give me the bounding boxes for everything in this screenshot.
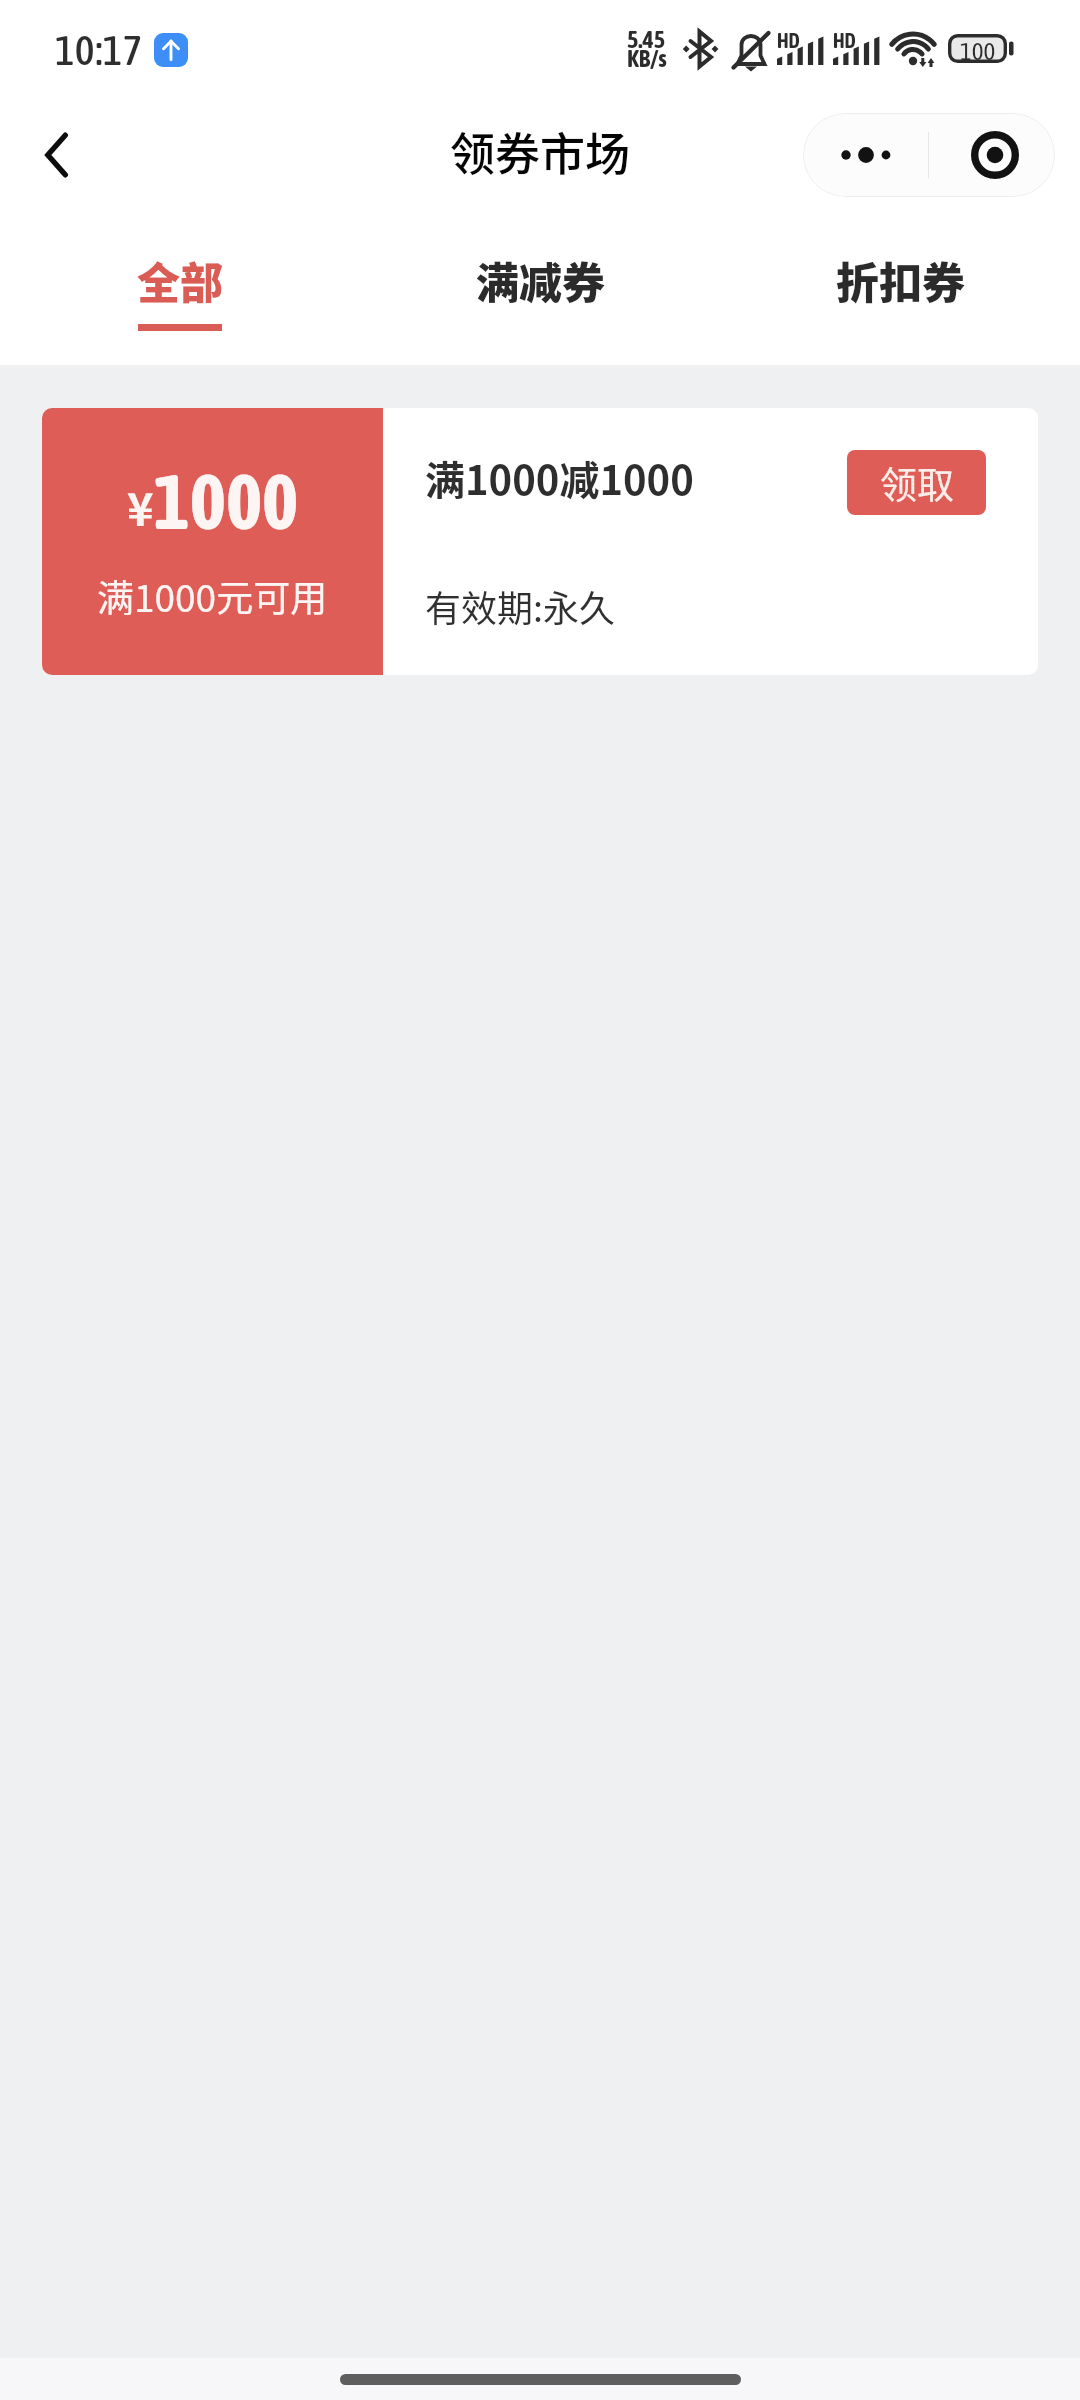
button[interactable]: 折扣券 [720,210,1080,365]
button[interactable]: 领取 [847,450,986,515]
button[interactable]: Close mini program [929,113,1055,197]
button[interactable]: 全部 [0,210,360,365]
staticText: 全部 [137,249,223,311]
button[interactable]: ¥1000 [42,408,1038,675]
staticText: 领券市场 [450,119,631,184]
staticText: HD [777,29,800,52]
button[interactable]: Back [7,100,107,210]
staticText: HD [833,29,856,52]
staticText: 满1000元可用 [97,569,328,623]
staticText: 满减券 [476,249,605,311]
staticText: 有效期:永久 [425,580,616,632]
button[interactable]: More options [803,113,928,197]
staticText: ¥1000 [127,457,299,545]
staticText: 5.45 [627,26,666,54]
staticText: KB/s [627,45,667,73]
button[interactable]: 满减券 [360,210,720,365]
staticText: 100 [960,37,996,66]
staticText: 领取 [880,456,954,510]
staticText: 折扣券 [836,249,965,311]
staticText: 10:17 [55,26,143,74]
staticText: 满1000减1000 [425,449,694,507]
